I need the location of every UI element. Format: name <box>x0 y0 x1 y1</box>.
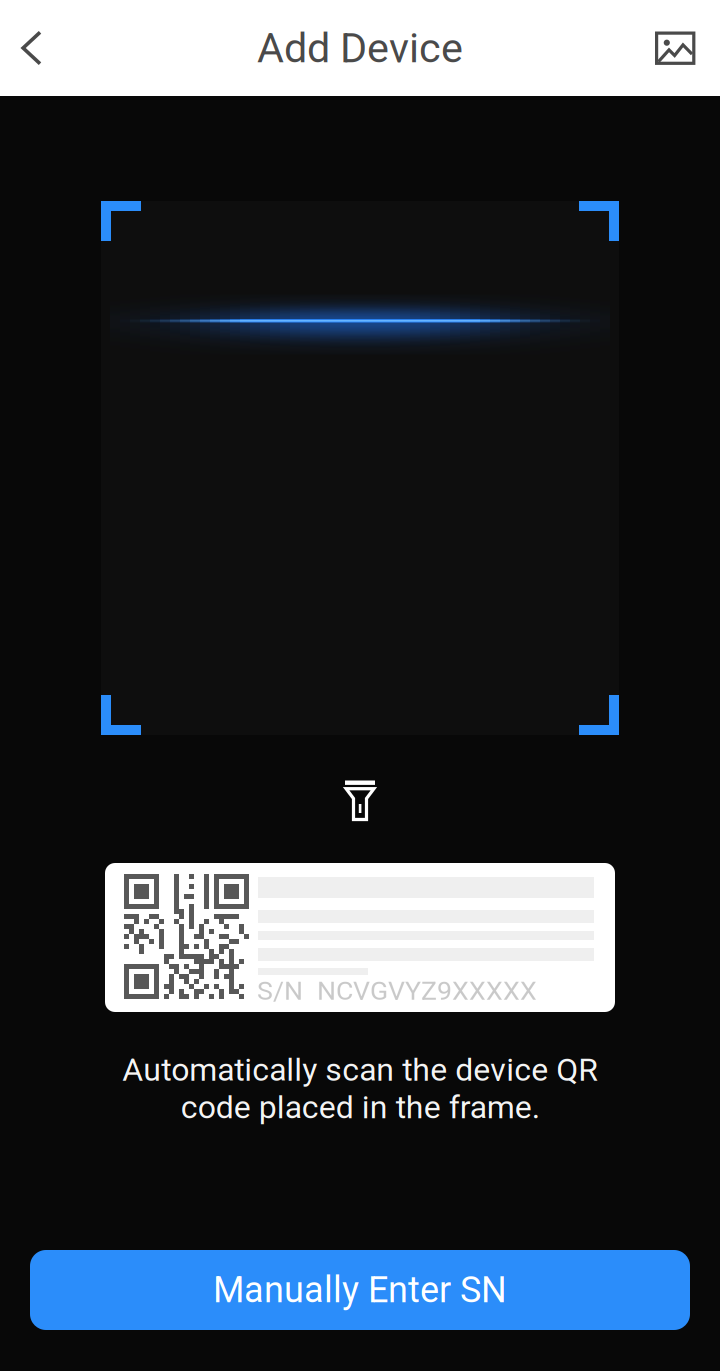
staticText: Automatically scan the device QR code pl… <box>122 1051 598 1126</box>
button[interactable]: Back <box>0 10 64 86</box>
staticText: S/N NCVGVYZ9XXXXX <box>257 975 537 1006</box>
button[interactable]: Flashlight <box>318 765 402 837</box>
button[interactable]: Manually Enter SN <box>30 1250 690 1330</box>
staticText: Manually Enter SN <box>213 1269 507 1311</box>
staticText: Add Device <box>257 24 463 72</box>
button[interactable]: Scan from photo library <box>637 10 713 86</box>
